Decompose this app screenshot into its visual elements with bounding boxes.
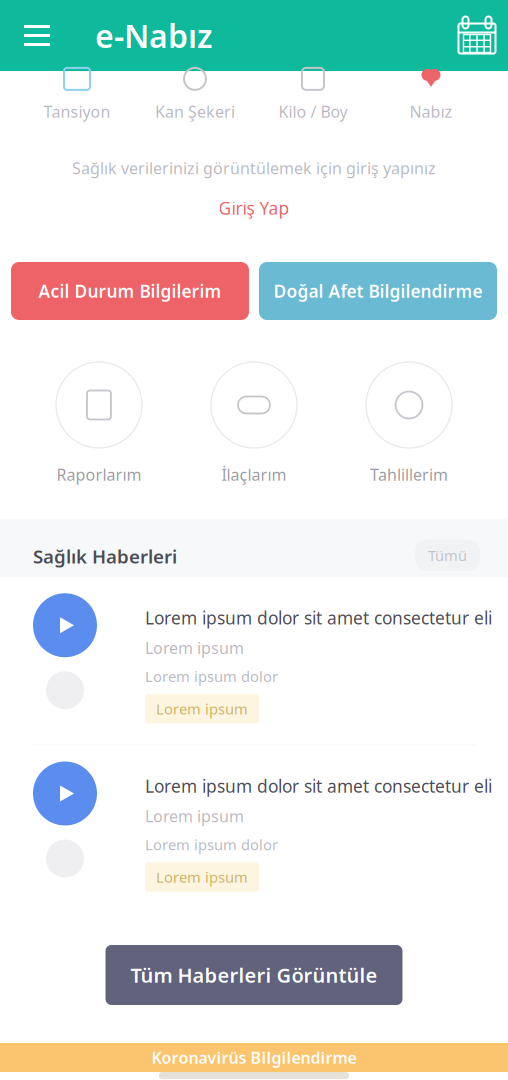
staticText: Raporlarım — [56, 464, 141, 485]
button[interactable]: Kilo / Boy — [254, 66, 372, 122]
staticText: Kilo / Boy — [278, 101, 347, 122]
staticText: Lorem ipsum dolor — [145, 666, 278, 686]
button[interactable]: Raporlarım — [21, 362, 176, 485]
staticText: Sağlık verilerinizi görüntülemek için gi… — [72, 157, 436, 179]
button[interactable]: Giriş Yap — [204, 198, 303, 218]
staticText: Kan Şekeri — [155, 101, 235, 122]
staticText: Doğal Afet Bilgilendirme — [273, 279, 482, 302]
button[interactable]: Lorem ipsum dolor sit amet consectetur e… — [0, 577, 508, 744]
button[interactable]: Tansiyon — [18, 66, 136, 122]
button[interactable]: Menu — [15, 9, 59, 61]
staticText: Nabız — [409, 101, 452, 122]
button[interactable]: Tahlillerim — [331, 362, 486, 485]
staticText: Tüm Haberleri Görüntüle — [130, 962, 377, 988]
staticText: İlaçlarım — [221, 464, 286, 485]
staticText: Lorem ipsum dolor sit amet consectetur e… — [145, 774, 492, 797]
button[interactable]: Doğal Afet Bilgilendirme — [259, 262, 497, 320]
button[interactable]: Calendar — [453, 9, 501, 61]
button[interactable]: Kan Şekeri — [136, 66, 254, 122]
staticText: Tümü — [428, 545, 467, 565]
button[interactable]: Lorem ipsum dolor sit amet consectetur e… — [0, 745, 508, 913]
staticText: Tahlillerim — [370, 464, 448, 485]
staticText: Acil Durum Bilgilerim — [38, 279, 221, 302]
staticText: Giriş Yap — [218, 196, 289, 219]
staticText: Sağlık Haberleri — [33, 544, 177, 569]
button[interactable]: İlaçlarım — [176, 362, 331, 485]
staticText: Lorem ipsum dolor sit amet consectetur e… — [145, 606, 492, 629]
staticText: Lorem ipsum — [145, 637, 244, 658]
staticText: Koronavirüs Bilgilendirme — [151, 1047, 356, 1068]
button[interactable]: Koronavirüs Bilgilendirme — [0, 1043, 508, 1072]
staticText: Tansiyon — [43, 101, 110, 122]
staticText: Lorem ipsum dolor — [145, 835, 278, 854]
button[interactable]: Tüm Haberleri Görüntüle — [105, 945, 402, 1005]
button[interactable]: Acil Durum Bilgilerim — [11, 262, 249, 320]
staticText: Lorem ipsum — [145, 805, 244, 827]
staticText: Lorem ipsum — [156, 699, 248, 718]
staticText: e-Nabız — [95, 14, 212, 57]
button[interactable]: Tümü — [415, 525, 480, 571]
staticText: Lorem ipsum — [156, 867, 248, 887]
button[interactable]: e-Nabız — [59, 9, 212, 61]
button[interactable]: Nabız — [372, 66, 490, 122]
